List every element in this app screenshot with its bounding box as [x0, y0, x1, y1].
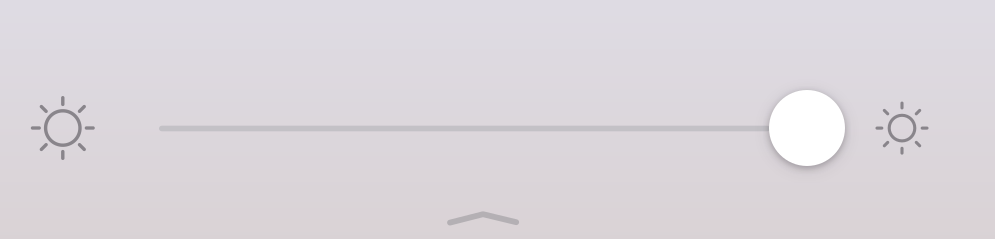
button[interactable]: Decrease brightness	[0, 0, 995, 239]
button[interactable]: Increase brightness	[0, 0, 995, 239]
button[interactable]: Brightness	[0, 0, 995, 239]
button[interactable]: Collapse	[0, 0, 995, 239]
